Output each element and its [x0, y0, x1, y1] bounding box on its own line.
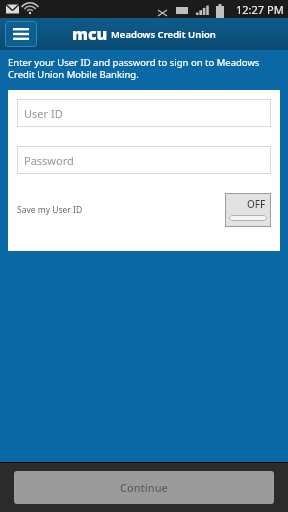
staticText: User ID: [24, 106, 63, 121]
staticText: 12:27 PM: [236, 2, 284, 17]
button[interactable]: Save my User ID toggle, off: [225, 193, 271, 227]
staticText: Save my User ID: [17, 204, 83, 216]
staticText: Enter your User ID and password to sign …: [8, 56, 278, 81]
staticText: Continue: [120, 480, 168, 495]
button[interactable]: User ID: [17, 99, 271, 127]
button[interactable]: Menu: [5, 21, 37, 47]
staticText: mcu: [72, 23, 108, 45]
button[interactable]: Password: [17, 146, 271, 174]
staticText: OFF: [247, 197, 266, 211]
button[interactable]: Continue: [14, 471, 274, 504]
staticText: Meadows Credit Union: [111, 28, 216, 41]
staticText: Password: [24, 153, 74, 168]
